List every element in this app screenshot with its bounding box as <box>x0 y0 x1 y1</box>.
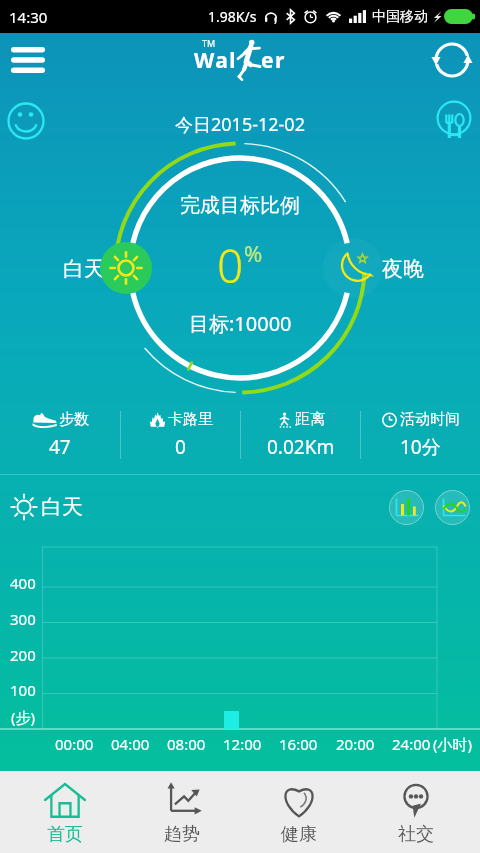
staticText: (小时) <box>433 734 473 754</box>
button[interactable]: 白天 <box>10 493 83 521</box>
staticText: 完成目标比例 <box>180 193 300 218</box>
staticText: 中国移动 <box>372 8 428 26</box>
staticText: 今日2015-12-02 <box>175 112 305 137</box>
button[interactable]: 步数 <box>0 396 120 474</box>
staticText: 社交 <box>398 823 434 846</box>
staticText: 趋势 <box>164 823 200 846</box>
button[interactable]: 健康 <box>240 771 357 853</box>
button[interactable]: Day <box>100 242 152 294</box>
staticText: % <box>244 238 263 268</box>
staticText: 步数 <box>59 410 89 429</box>
button[interactable]: 社交 <box>357 771 474 853</box>
button[interactable]: Refresh <box>424 33 480 87</box>
staticText: 活动时间 <box>400 410 460 429</box>
staticText: 00:00 <box>55 734 94 754</box>
staticText: 0 <box>217 234 244 297</box>
button[interactable]: Mood <box>2 97 50 145</box>
button[interactable]: 卡路里 <box>121 396 240 474</box>
staticText: 目标:10000 <box>189 310 292 337</box>
staticText: 200 <box>10 645 36 665</box>
button[interactable]: 首页 <box>6 771 123 853</box>
staticText: 12:00 <box>223 734 262 754</box>
staticText: Wal <box>194 46 237 75</box>
staticText: 健康 <box>281 823 317 846</box>
staticText: 08:00 <box>167 734 206 754</box>
button[interactable]: 距离 <box>241 396 360 474</box>
button[interactable]: 趋势 <box>123 771 240 853</box>
staticText: er <box>261 46 286 75</box>
staticText: (步) <box>11 707 36 727</box>
staticText: 10分 <box>400 434 441 460</box>
staticText: 24:00 <box>392 734 431 754</box>
staticText: 0.02Km <box>267 434 335 460</box>
staticText: 300 <box>10 609 36 629</box>
staticText: 1.98K/s <box>208 7 257 26</box>
staticText: TM <box>202 37 216 49</box>
button[interactable]: Menu <box>0 33 56 87</box>
staticText: 100 <box>10 680 36 700</box>
staticText: 距离 <box>295 410 325 429</box>
staticText: 白天 <box>63 256 105 282</box>
staticText: 14:30 <box>9 7 48 27</box>
staticText: 16:00 <box>279 734 318 754</box>
staticText: 0 <box>175 434 186 460</box>
button[interactable]: 活动时间 <box>361 396 480 474</box>
staticText: 夜晚 <box>382 256 424 282</box>
staticText: 白天 <box>41 494 83 520</box>
button[interactable]: Night <box>326 242 378 294</box>
staticText: 47 <box>49 434 71 460</box>
staticText: 04:00 <box>111 734 150 754</box>
staticText: 首页 <box>47 823 83 846</box>
staticText: 卡路里 <box>168 410 213 429</box>
button[interactable]: Food <box>430 96 478 144</box>
button[interactable]: Line chart <box>435 490 470 525</box>
button[interactable]: Bar chart <box>389 490 424 525</box>
staticText: 400 <box>10 573 36 593</box>
staticText: 20:00 <box>336 734 375 754</box>
